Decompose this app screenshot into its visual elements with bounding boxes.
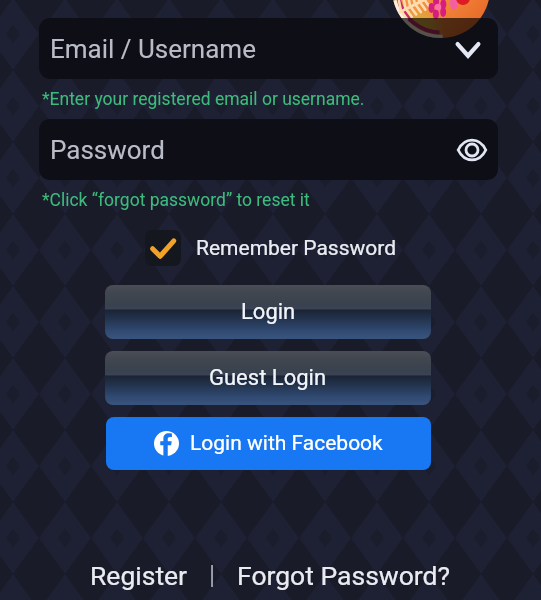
button[interactable]: Email / Username <box>39 18 498 79</box>
staticText: Login with Facebook <box>190 431 383 456</box>
button[interactable]: Show saved accounts <box>455 36 481 62</box>
staticText: | <box>209 561 216 590</box>
button[interactable]: Register <box>90 560 209 591</box>
staticText: *Enter your registered email or username… <box>42 89 365 110</box>
button[interactable]: Login <box>105 285 431 339</box>
button[interactable]: Show password <box>457 135 487 165</box>
staticText: Remember Password <box>196 236 397 261</box>
button[interactable]: Remember Password <box>145 230 397 266</box>
button[interactable]: Guest Login <box>105 351 431 405</box>
staticText: *Click “forgot password” to reset it <box>42 190 310 211</box>
staticText: Email / Username <box>50 34 256 64</box>
staticText: Guest Login <box>209 365 327 391</box>
button[interactable]: Login with Facebook <box>106 417 431 470</box>
button[interactable]: Forgot Password? <box>216 560 451 591</box>
button[interactable]: Password <box>39 119 498 180</box>
staticText: Login <box>241 299 296 325</box>
staticText: Password <box>50 135 165 165</box>
